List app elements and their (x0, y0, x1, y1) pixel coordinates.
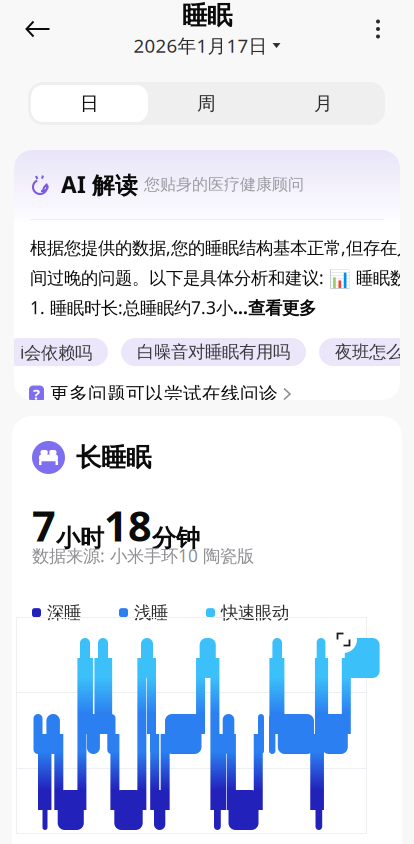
staticText: 日 (80, 92, 99, 115)
staticText: 快速眼动 (221, 602, 289, 623)
staticText: 间过晚的问题。以下是具体分析和建议: 📊 睡眠数据分析 (30, 266, 414, 289)
staticText: 根据您提供的数据,您的睡眠结构基本正常,但存在入睡时 (30, 236, 414, 259)
staticText: i会依赖吗 (20, 340, 92, 364)
staticText: AI 解读 (61, 169, 138, 200)
staticText: 月 (314, 92, 333, 115)
staticText: 更多问题可以尝试在线问诊 (50, 383, 278, 405)
staticText: 2026年1月17日 (133, 33, 267, 58)
staticText: 睡眠 (182, 0, 232, 31)
staticText: 深睡 (47, 602, 81, 623)
staticText: ? (33, 384, 40, 404)
staticText: 周 (197, 92, 216, 115)
button[interactable]: 白噪音对睡眠有用吗 (121, 338, 306, 366)
staticText: 7 (32, 498, 56, 553)
staticText: 小时 (56, 523, 104, 553)
button[interactable]: i会依赖吗 (4, 338, 108, 366)
button[interactable]: 周 (148, 85, 265, 122)
staticText: 1. 睡眠时长:总睡眠约7.3小 (30, 296, 233, 319)
button[interactable]: 日 (31, 85, 148, 122)
button[interactable]: 月 (265, 85, 382, 122)
staticText: 分钟 (152, 523, 200, 553)
button[interactable]: More options (356, 7, 400, 51)
staticText: 您贴身的医疗健康顾问 (144, 175, 304, 194)
staticText: 夜班怎么调整睡 (335, 341, 414, 363)
staticText: 18 (104, 498, 152, 553)
staticText: 长睡眠 (76, 442, 151, 473)
staticText: 数据来源: 小米手环10 陶瓷版 (32, 544, 254, 567)
staticText: 浅睡 (134, 602, 168, 623)
staticText: 白噪音对睡眠有用吗 (137, 341, 290, 363)
button[interactable]: Back (16, 7, 60, 51)
button[interactable]: 夜班怎么调整睡 (319, 338, 414, 366)
staticText: ...查看更多 (233, 296, 316, 319)
button[interactable]: ? (14, 382, 400, 406)
